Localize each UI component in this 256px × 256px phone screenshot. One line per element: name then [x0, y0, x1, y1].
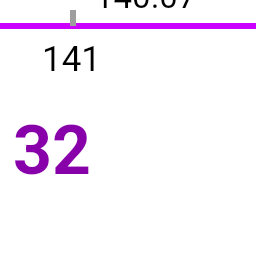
button[interactable]: Value slider, 140.07 [0, 0, 256, 32]
staticText: 32 [13, 111, 92, 191]
staticText: 140.07 [95, 0, 197, 16]
staticText: 141 [42, 39, 102, 80]
